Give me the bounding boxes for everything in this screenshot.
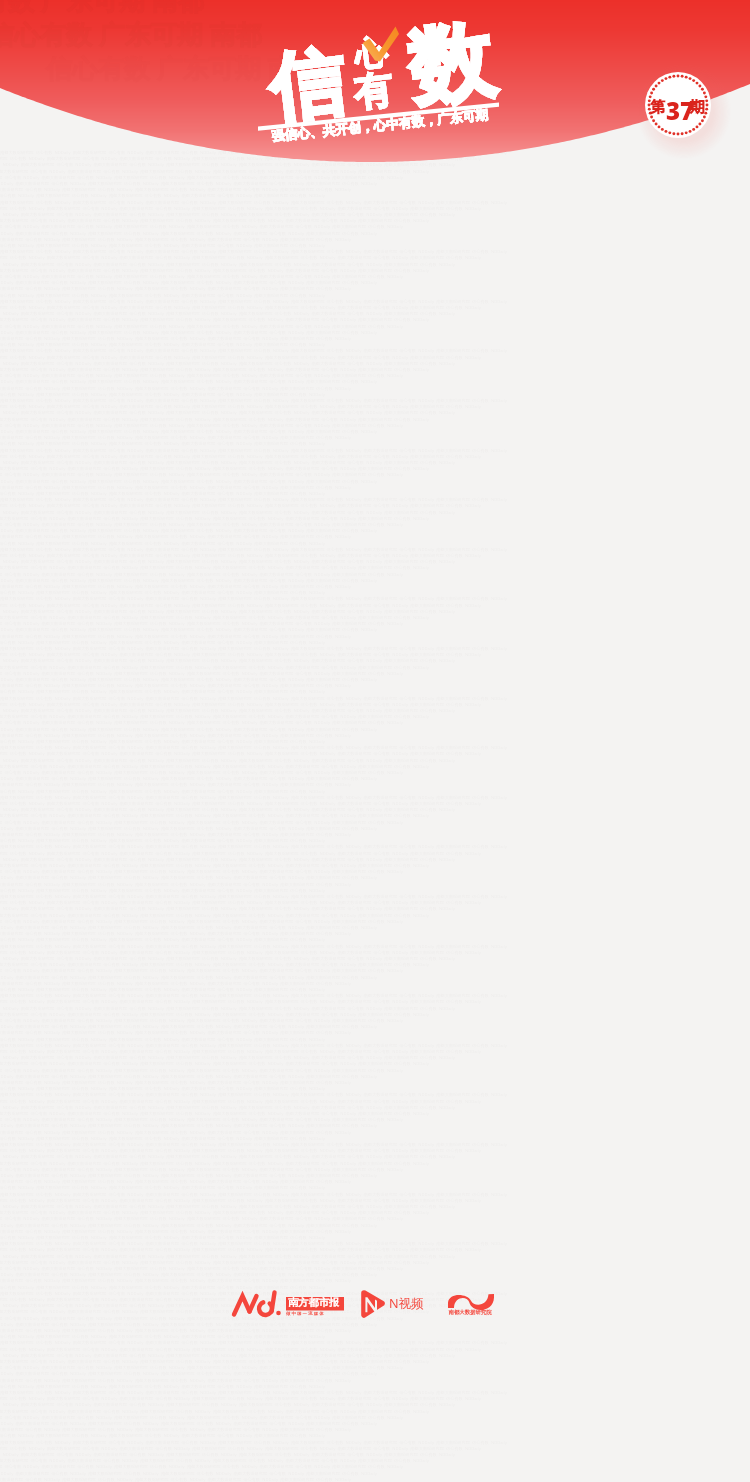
button[interactable]: 第37期 xyxy=(645,72,711,138)
button[interactable]: 南方都市报 N视频 南都大数据研究院 xyxy=(228,1286,498,1322)
